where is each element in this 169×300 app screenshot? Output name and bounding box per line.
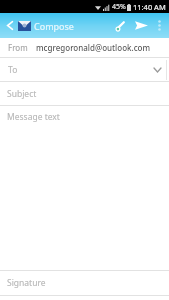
- staticText: To: [8, 64, 18, 76]
- staticText: Message text: [7, 111, 60, 123]
- staticText: 11:40 AM: [133, 2, 166, 12]
- button[interactable]: Signature: [0, 271, 169, 295]
- staticText: Signature: [7, 277, 46, 289]
- button[interactable]: To: [0, 58, 169, 81]
- button[interactable]: Expand recipients: [148, 58, 166, 81]
- staticText: Subject: [7, 88, 37, 100]
- staticText: From: [8, 42, 28, 53]
- button[interactable]: From: [0, 38, 169, 57]
- button[interactable]: Subject: [0, 82, 169, 105]
- button[interactable]: Back: [3, 13, 17, 38]
- button[interactable]: Send: [130, 13, 152, 38]
- staticText: mcgregoronald@outlook.com: [36, 42, 151, 53]
- button[interactable]: Message text: [0, 106, 169, 128]
- button[interactable]: Attach: [110, 13, 130, 38]
- staticText: 45%: [112, 2, 126, 12]
- button[interactable]: More options: [152, 13, 166, 38]
- staticText: Compose: [34, 20, 74, 32]
